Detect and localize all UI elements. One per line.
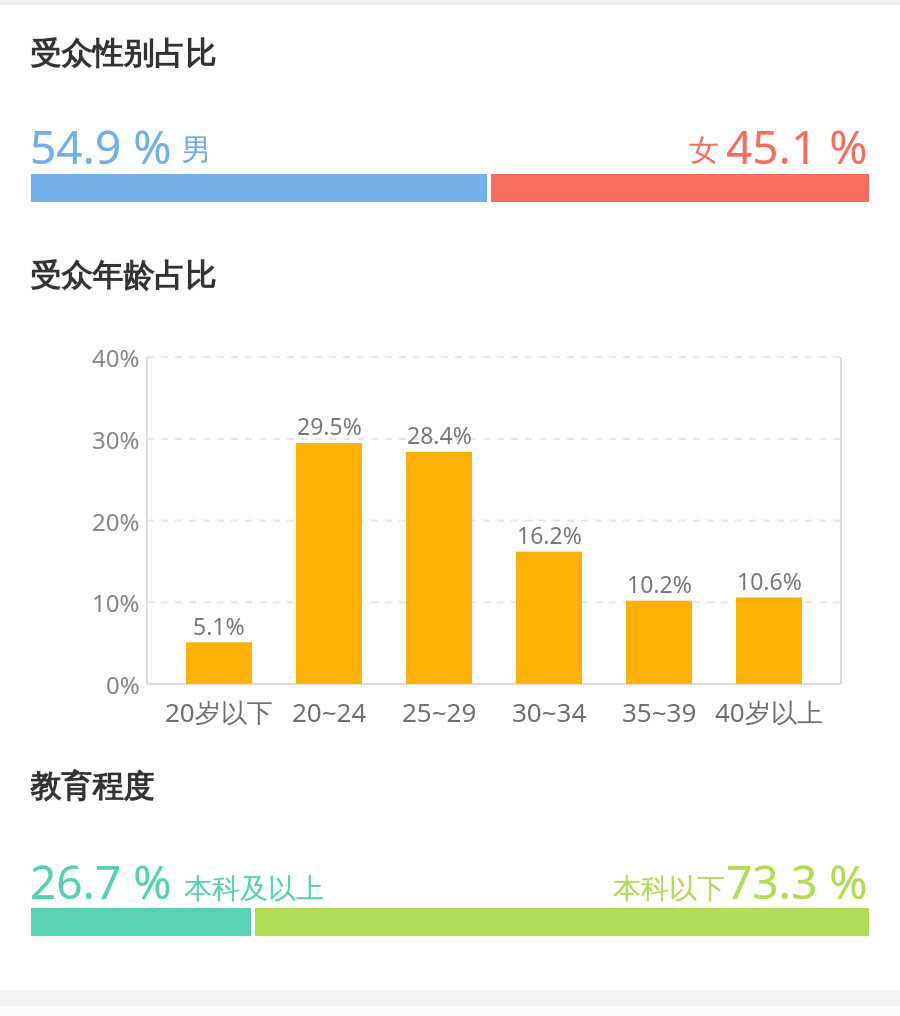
staticText: 20~24: [292, 694, 367, 729]
staticText: 28.4%: [407, 419, 472, 450]
staticText: 40岁以上: [715, 694, 823, 730]
staticText: 73.3 %: [726, 850, 868, 913]
staticText: 45.1 %: [726, 115, 868, 178]
staticText: 受众性别占比: [30, 34, 216, 73]
staticText: 26.7 %: [30, 850, 172, 913]
staticText: 20岁以下: [165, 694, 273, 730]
staticText: 20%: [92, 505, 140, 538]
staticText: 54.9 %: [30, 115, 172, 178]
staticText: 40%: [92, 341, 140, 374]
staticText: 10.2%: [627, 568, 692, 599]
staticText: 0%: [106, 668, 140, 701]
staticText: 本科及以上: [184, 871, 324, 906]
staticText: 10.6%: [737, 565, 802, 596]
staticText: 5.1%: [193, 610, 245, 641]
staticText: 30~34: [512, 694, 587, 729]
staticText: 男: [181, 131, 211, 169]
staticText: 30%: [92, 423, 140, 456]
staticText: 25~29: [402, 694, 477, 729]
staticText: 10%: [92, 586, 140, 619]
staticText: 29.5%: [297, 410, 362, 441]
staticText: 受众年龄占比: [30, 256, 216, 295]
staticText: 35~39: [622, 694, 697, 729]
staticText: 本科以下: [613, 871, 725, 906]
staticText: 教育程度: [30, 767, 154, 806]
staticText: 女: [689, 131, 719, 169]
staticText: 16.2%: [517, 519, 582, 550]
